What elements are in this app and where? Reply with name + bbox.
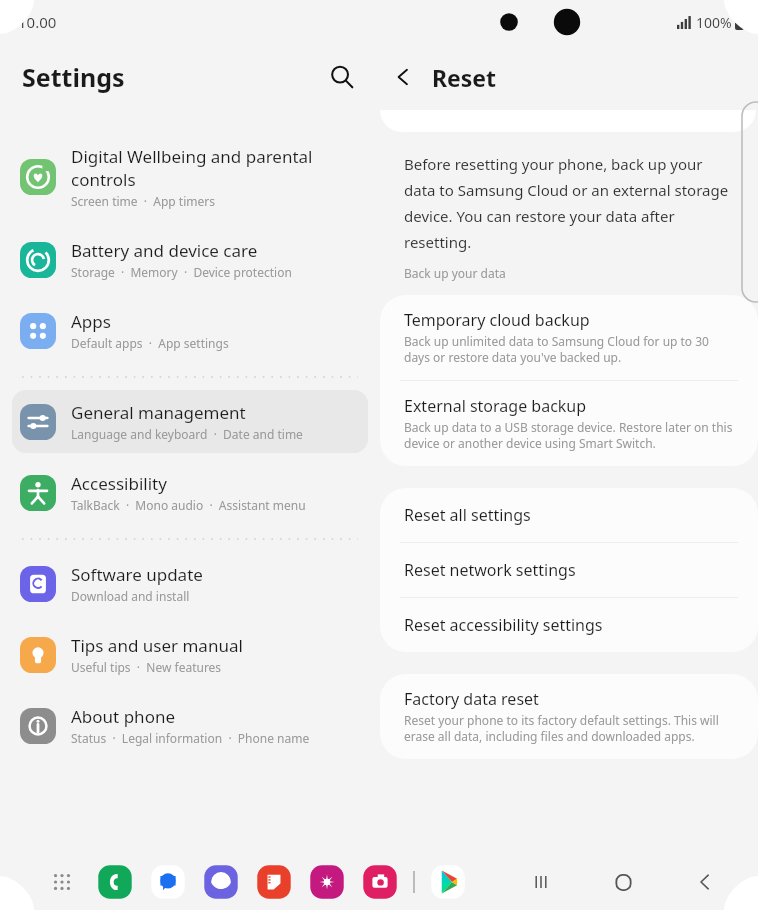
button[interactable]: Back: [682, 859, 728, 905]
button[interactable]: Reset all settings: [380, 488, 758, 543]
button[interactable]: Digital Wellbeing and parental controls: [12, 134, 368, 220]
staticText: Reset network settings: [404, 559, 576, 581]
staticText: Before resetting your phone, back up you…: [404, 154, 734, 253]
button[interactable]: Reset accessibility settings: [380, 598, 758, 652]
button[interactable]: Accessibility: [12, 461, 368, 524]
staticText: Reset your phone to its factory default …: [404, 712, 734, 745]
button[interactable]: Software update: [12, 552, 368, 615]
staticText: Digital Wellbeing and parental controls: [71, 145, 313, 191]
button[interactable]: Back: [380, 54, 426, 100]
staticText: Reset all settings: [404, 504, 531, 526]
staticText: Battery and device care: [71, 239, 258, 262]
button[interactable]: Apps: [12, 299, 368, 362]
staticText: Download and install: [71, 588, 190, 604]
staticText: Useful tips · New features: [71, 659, 222, 675]
button[interactable]: Phone: [95, 862, 135, 902]
button[interactable]: Tips and user manual: [12, 623, 368, 686]
button[interactable]: Camera: [360, 862, 400, 902]
staticText: Screen time · App timers: [71, 193, 215, 209]
button[interactable]: Temporary cloud backup: [380, 295, 758, 381]
button[interactable]: Factory data reset: [380, 674, 758, 759]
button[interactable]: Gallery: [307, 862, 347, 902]
staticText: Tips and user manual: [71, 634, 243, 657]
button[interactable]: Reset network settings: [380, 543, 758, 598]
staticText: Default apps · App settings: [71, 335, 229, 351]
button[interactable]: Notes: [254, 862, 294, 902]
staticText: About phone: [71, 705, 176, 728]
button[interactable]: Battery and device care: [12, 228, 368, 291]
button[interactable]: About phone: [12, 694, 368, 757]
staticText: Back up unlimited data to Samsung Cloud …: [404, 333, 734, 366]
button[interactable]: Apps: [42, 862, 82, 902]
staticText: Apps: [71, 310, 111, 333]
button[interactable]: Home: [600, 859, 646, 905]
staticText: 100%: [696, 13, 732, 32]
staticText: Factory data reset: [404, 688, 539, 710]
staticText: TalkBack · Mono audio · Assistant menu: [71, 497, 306, 513]
staticText: Reset: [432, 62, 497, 93]
staticText: Temporary cloud backup: [404, 309, 590, 331]
button[interactable]: External storage backup: [380, 381, 758, 466]
staticText: Settings: [22, 60, 125, 94]
button[interactable]: General management: [12, 390, 368, 453]
button[interactable]: Recent apps: [518, 859, 564, 905]
staticText: Back up your data: [404, 265, 506, 281]
button[interactable]: Search: [318, 53, 366, 101]
staticText: Accessibility: [71, 472, 167, 495]
staticText: General management: [71, 401, 246, 424]
button[interactable]: Internet: [201, 862, 241, 902]
staticText: Back up data to a USB storage device. Re…: [404, 419, 734, 452]
staticText: Storage · Memory · Device protection: [71, 264, 292, 280]
staticText: Language and keyboard · Date and time: [71, 426, 303, 442]
staticText: Status · Legal information · Phone name: [71, 730, 310, 746]
button[interactable]: Messages: [148, 862, 188, 902]
staticText: 10.00: [18, 12, 57, 32]
button[interactable]: Play Store: [428, 862, 468, 902]
staticText: Software update: [71, 563, 203, 586]
staticText: Reset accessibility settings: [404, 614, 603, 636]
staticText: External storage backup: [404, 395, 587, 417]
